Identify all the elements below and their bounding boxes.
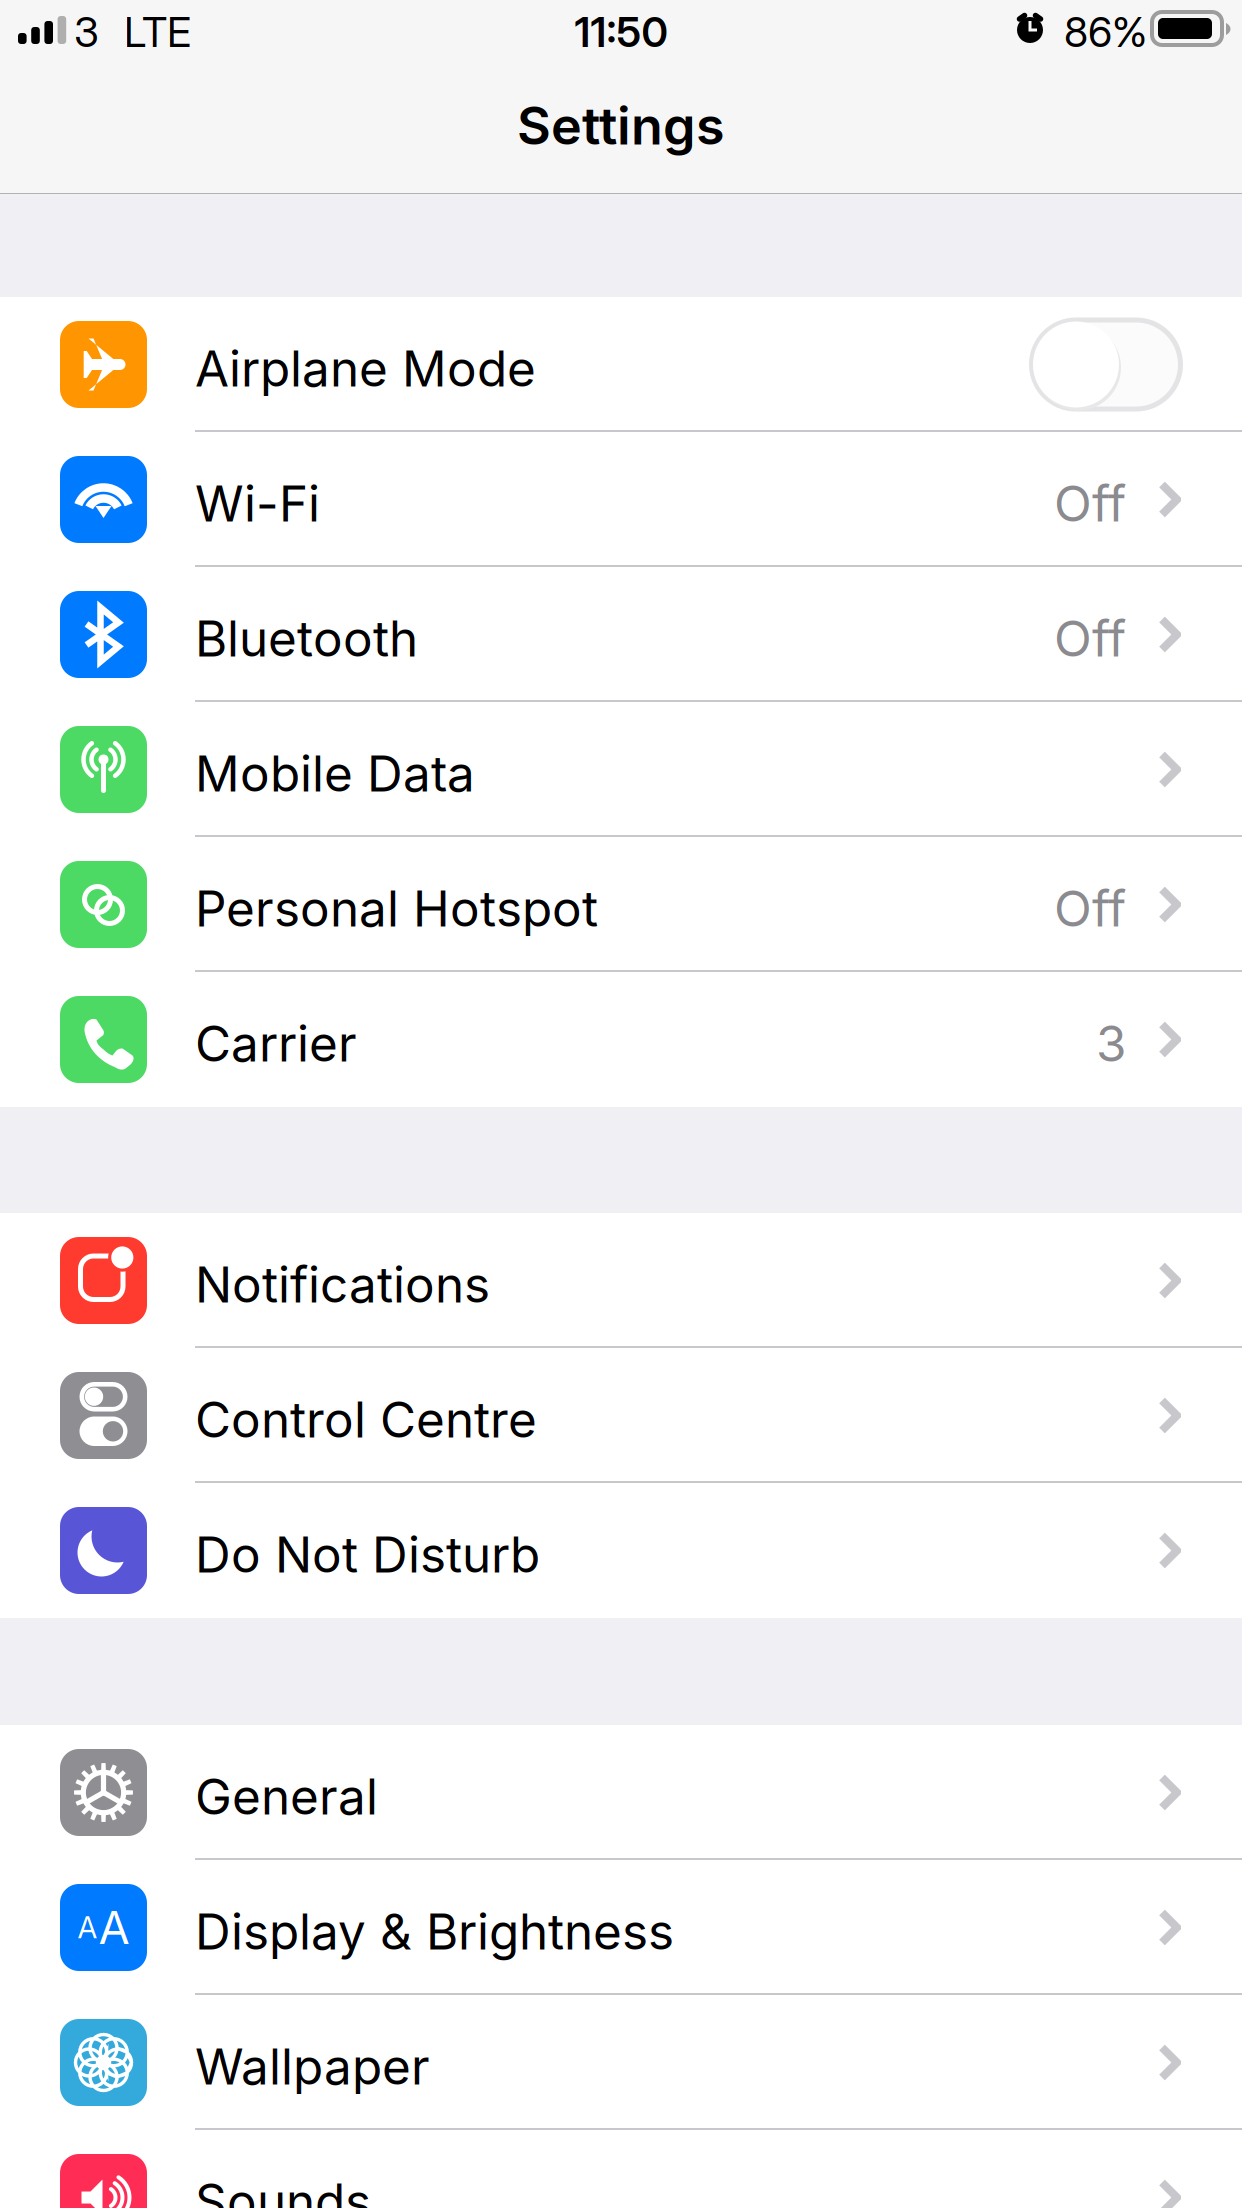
button[interactable]: General [0,1725,1242,1860]
button[interactable]: Notifications [0,1213,1242,1348]
staticText: Personal Hotspot [195,879,598,938]
button[interactable]: Carrier [0,972,1242,1107]
staticText: Wi-Fi [195,474,320,533]
staticText: Off [1054,609,1126,668]
button[interactable]: Airplane Mode [0,297,1242,432]
button[interactable]: A [0,1860,1242,1995]
button[interactable]: Sounds [0,2130,1242,2208]
button[interactable]: Control Centre [0,1348,1242,1483]
button[interactable]: Bluetooth [0,567,1242,702]
button[interactable]: Personal Hotspot [0,837,1242,972]
staticText: A [98,1900,129,1955]
staticText: 86% [1064,7,1147,57]
staticText: 11:50 [574,7,667,57]
staticText: LTE [124,7,191,57]
staticText: Notifications [195,1255,490,1314]
staticText: 3 [74,7,99,57]
staticText: Wallpaper [195,2037,430,2096]
staticText: 3 [1096,1014,1126,1073]
staticText: Mobile Data [195,744,475,803]
button[interactable]: Mobile Data [0,702,1242,837]
button[interactable]: Wi-Fi [0,432,1242,567]
staticText: Off [1054,474,1126,533]
button[interactable]: Wallpaper [0,1995,1242,2130]
staticText: Airplane Mode [195,339,536,398]
staticText: Settings [517,94,725,157]
staticText: General [195,1767,378,1826]
staticText: Do Not Disturb [195,1525,540,1584]
staticText: Control Centre [195,1390,537,1449]
staticText: A [77,1910,97,1945]
staticText: Bluetooth [195,609,418,668]
staticText: Carrier [195,1014,357,1073]
staticText: Display & Brightness [195,1902,674,1961]
button[interactable]: Do Not Disturb [0,1483,1242,1618]
staticText: Off [1054,879,1126,938]
staticText: Sounds [195,2172,371,2208]
